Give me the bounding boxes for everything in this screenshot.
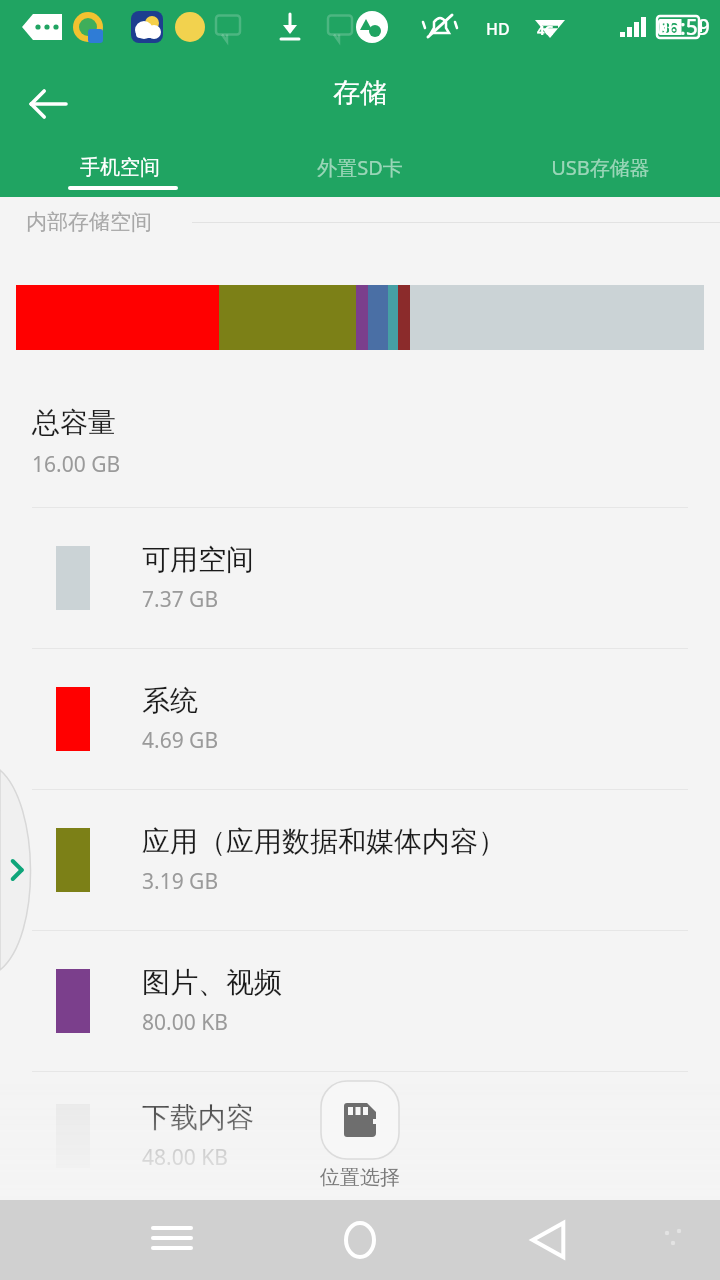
other: 位置选择 [321,1081,399,1159]
button[interactable]: 可用空间 [0,508,720,648]
staticText: 外置SD卡 [317,154,403,181]
button[interactable]: 外置SD卡 [240,137,480,197]
staticText: 06:59 [656,13,710,42]
staticText: 下载内容 [142,1100,254,1135]
button[interactable]: 系统 [0,649,720,789]
staticText: 应用（应用数据和媒体内容） [142,824,506,859]
staticText: 38 [662,18,679,37]
staticText: 手机空间 [80,155,160,180]
button[interactable]: 图片、视频 [0,931,720,1071]
button[interactable]: 手机空间 [0,137,240,197]
button[interactable]: 下载内容 [0,1072,720,1200]
button[interactable]: 侧边栏 [0,770,44,970]
button[interactable]: 位置选择 [320,1081,400,1190]
staticText: 4G [537,21,554,39]
button[interactable]: 菜单 [132,1200,212,1280]
staticText: 系统 [142,683,198,718]
button[interactable]: 主页 [320,1200,400,1280]
staticText: USB存储器 [551,154,650,181]
staticText: 图片、视频 [142,965,282,1000]
staticText: 位置选择 [320,1165,400,1190]
button[interactable]: 返回 [12,68,84,140]
staticText: 3.19 GB [142,867,219,896]
staticText: 存储 [333,76,387,110]
staticText: 7.37 GB [142,585,219,614]
staticText: 4.69 GB [142,726,219,755]
staticText: 48.00 KB [142,1143,228,1172]
staticText: 16.00 GB [32,450,121,479]
button[interactable]: 应用（应用数据和媒体内容） [0,790,720,930]
staticText: 内部存储空间 [26,209,152,235]
button[interactable]: 返回 [508,1200,588,1280]
staticText: 80.00 KB [142,1008,228,1037]
button[interactable]: USB存储器 [480,137,720,197]
staticText: HD [486,18,510,40]
staticText: 总容量 [32,405,116,440]
staticText: 可用空间 [142,542,254,577]
